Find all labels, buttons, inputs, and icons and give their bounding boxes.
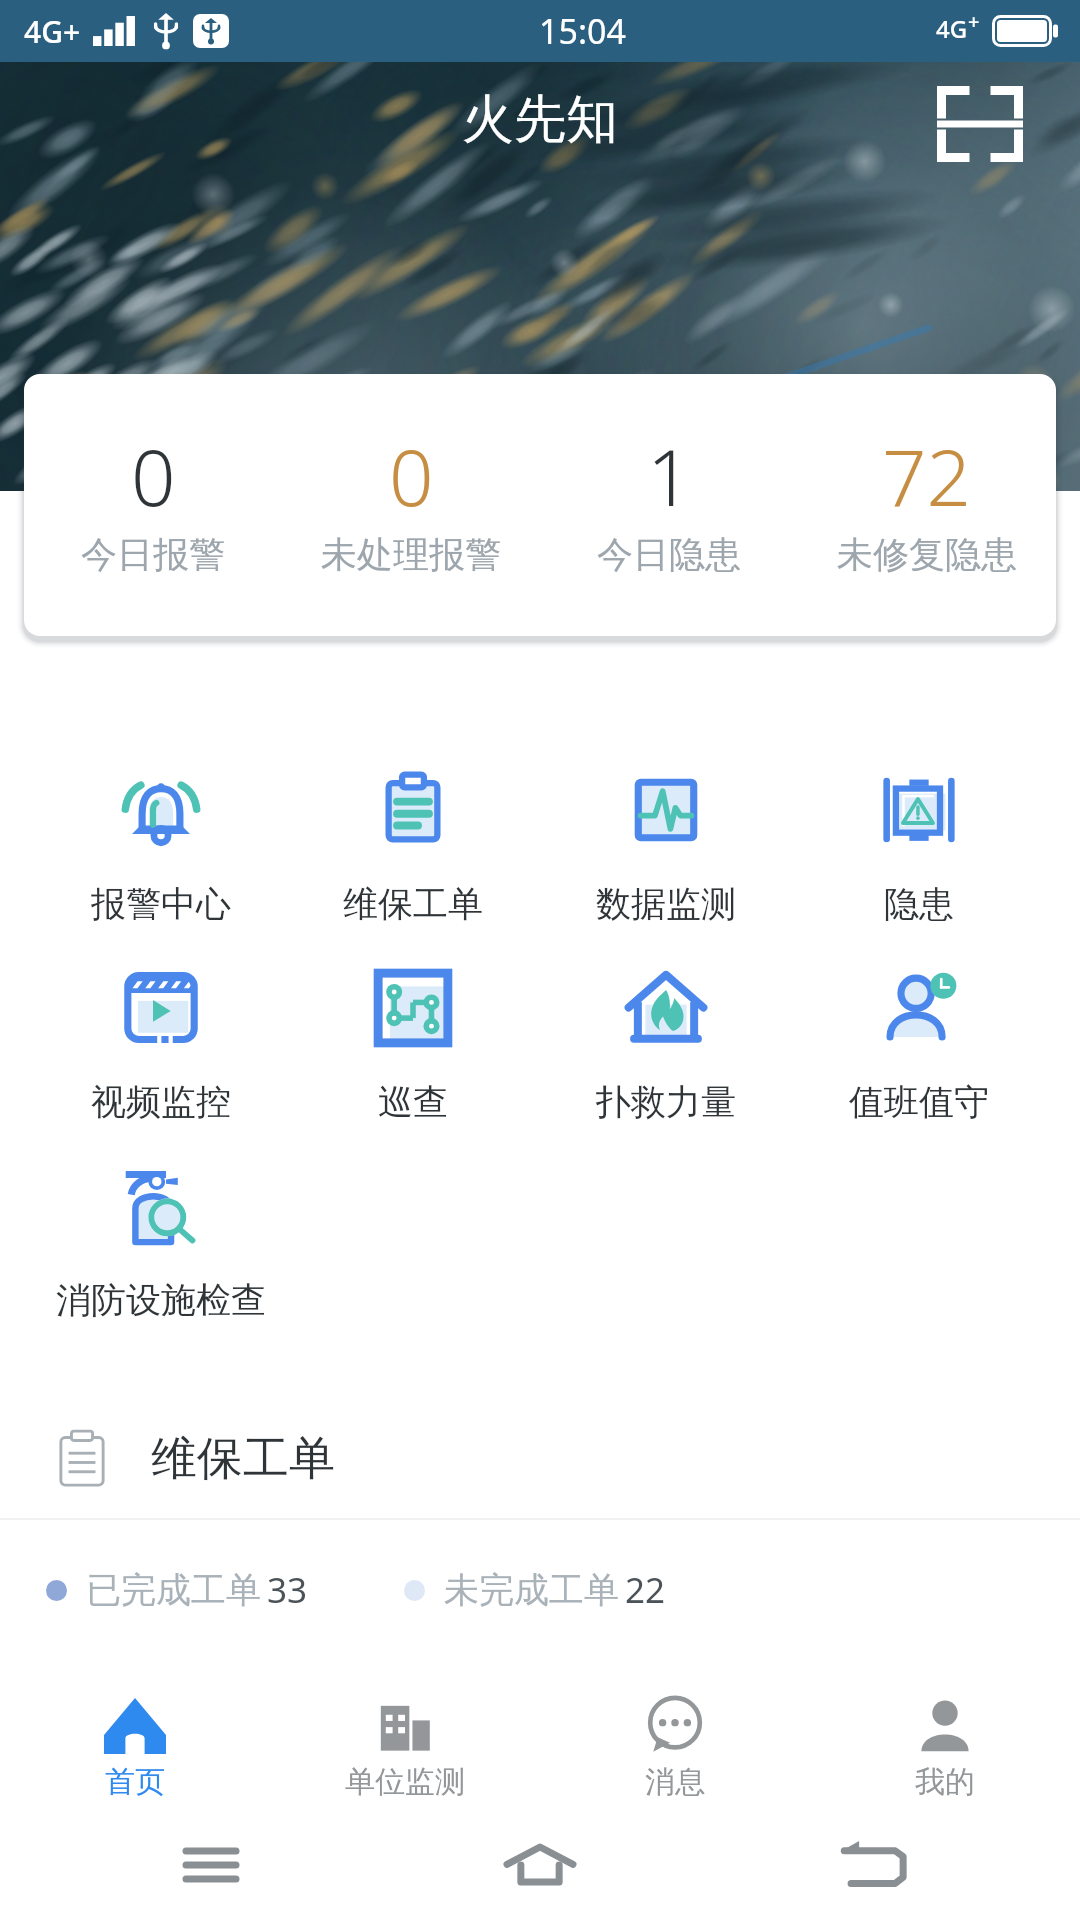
- button[interactable]: 维保工单: [0, 1399, 1080, 1518]
- staticText: 消息: [645, 1763, 705, 1801]
- button[interactable]: 单位监测: [270, 1660, 540, 1820]
- staticText: 4G+: [24, 11, 81, 52]
- button[interactable]: 0: [282, 374, 540, 636]
- button[interactable]: Home: [490, 1815, 590, 1915]
- button[interactable]: 值班值守: [792, 926, 1045, 1124]
- button[interactable]: 消息: [540, 1660, 810, 1820]
- staticText: 0: [389, 423, 434, 529]
- staticText: 未修复隐患: [837, 532, 1017, 577]
- button[interactable]: Recents: [161, 1815, 261, 1915]
- staticText: 1: [647, 423, 692, 529]
- staticText: 火先知: [462, 87, 618, 153]
- staticText: 今日报警: [81, 532, 225, 577]
- button[interactable]: Back: [824, 1815, 924, 1915]
- button[interactable]: 隐患: [792, 728, 1045, 926]
- staticText: 维保工单: [343, 882, 483, 926]
- staticText: 数据监测: [596, 882, 736, 926]
- staticText: 消防设施检查: [56, 1278, 266, 1322]
- button[interactable]: 1: [540, 374, 798, 636]
- staticText: 扑救力量: [596, 1080, 736, 1124]
- staticText: 33: [267, 1566, 308, 1614]
- staticText: 0: [131, 423, 176, 529]
- staticText: 我的: [915, 1763, 975, 1801]
- staticText: 已完成工单: [86, 1568, 261, 1612]
- button[interactable]: 已完成工单: [46, 1566, 308, 1614]
- staticText: 单位监测: [345, 1763, 465, 1801]
- button[interactable]: 扫一扫: [918, 62, 1042, 186]
- button[interactable]: 报警中心: [35, 728, 287, 926]
- button[interactable]: 维保工单: [287, 728, 539, 926]
- staticText: 隐患: [884, 882, 954, 926]
- staticText: 今日隐患: [597, 532, 741, 577]
- button[interactable]: 首页: [0, 1660, 270, 1820]
- staticText: 未完成工单: [444, 1568, 619, 1612]
- staticText: 4G: [936, 12, 968, 45]
- button[interactable]: 72: [798, 374, 1056, 636]
- button[interactable]: 我的: [810, 1660, 1080, 1820]
- button[interactable]: 未完成工单: [404, 1566, 666, 1614]
- staticText: 报警中心: [91, 882, 231, 926]
- button[interactable]: 0: [24, 374, 282, 636]
- button[interactable]: 巡查: [287, 926, 539, 1124]
- button[interactable]: 视频监控: [35, 926, 287, 1124]
- staticText: 72: [882, 423, 972, 529]
- button[interactable]: 扑救力量: [539, 926, 792, 1124]
- staticText: 巡查: [378, 1080, 448, 1124]
- staticText: 15:04: [539, 8, 626, 54]
- button[interactable]: 数据监测: [539, 728, 792, 926]
- staticText: 未处理报警: [321, 532, 501, 577]
- button[interactable]: 消防设施检查: [35, 1124, 287, 1322]
- staticText: +: [968, 8, 980, 35]
- staticText: 22: [625, 1566, 666, 1614]
- staticText: 值班值守: [849, 1080, 989, 1124]
- staticText: 视频监控: [91, 1080, 231, 1124]
- staticText: 首页: [105, 1763, 165, 1801]
- staticText: 维保工单: [151, 1430, 335, 1488]
